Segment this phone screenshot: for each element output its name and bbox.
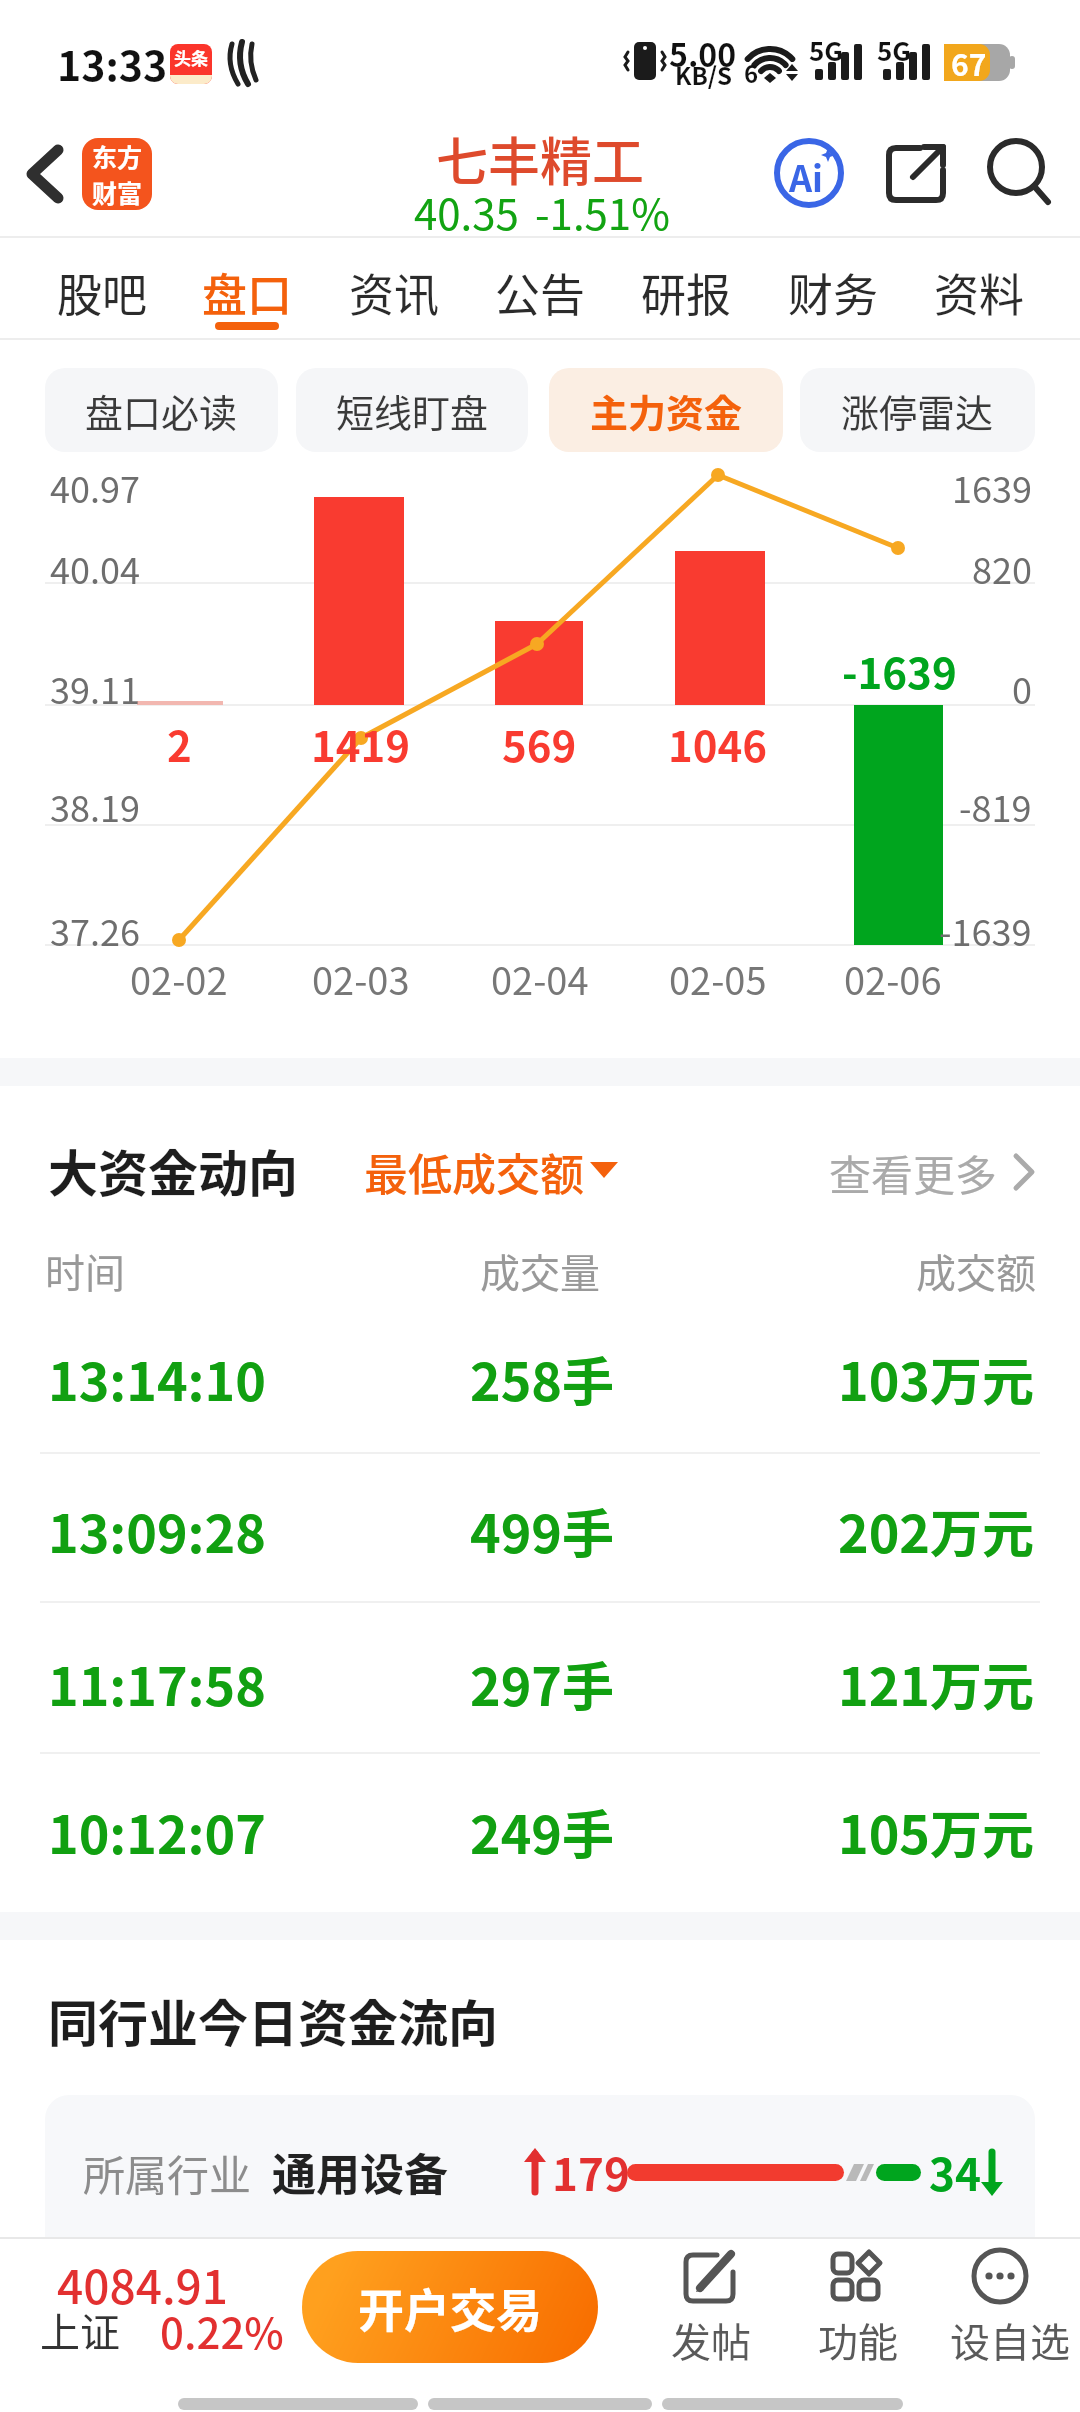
staticText: 财富 — [92, 174, 143, 210]
staticText: 时间 — [45, 1242, 125, 1300]
staticText: 设自选 — [950, 2311, 1070, 2369]
staticText: -1.51% — [535, 181, 670, 242]
button[interactable]: 涨停雷达 — [800, 368, 1035, 452]
button[interactable]: 主力资金 — [549, 368, 783, 452]
button[interactable] — [20, 2250, 280, 2360]
staticText: 5G — [809, 31, 843, 69]
button[interactable]: 资料 — [909, 248, 1049, 336]
staticText: 查看更多 — [829, 1142, 998, 1203]
staticText: 121万元 — [838, 1646, 1035, 1721]
staticText: 盘口 — [202, 260, 293, 325]
staticText: 财务 — [788, 260, 879, 325]
staticText: 盘口必读 — [85, 383, 238, 438]
button[interactable] — [880, 138, 952, 208]
staticText: 5.00 — [669, 30, 737, 76]
staticText: 上证 — [40, 2301, 120, 2359]
staticText: 499手 — [470, 1493, 615, 1568]
button[interactable] — [360, 1130, 630, 1210]
staticText: 179 — [552, 2140, 630, 2204]
staticText: 11:17:58 — [48, 1646, 266, 1721]
staticText: 资料 — [934, 260, 1025, 325]
staticText: 七丰精工 — [436, 121, 645, 196]
staticText: 6 — [744, 55, 759, 90]
staticText: 39.11 — [50, 662, 140, 714]
button[interactable] — [984, 136, 1054, 210]
staticText: 同行业今日资金流向 — [48, 1984, 498, 2056]
staticText: 569 — [502, 713, 577, 774]
staticText: 5G — [877, 31, 911, 69]
button[interactable] — [40, 1318, 1040, 1438]
staticText: 大资金动向 — [48, 1134, 298, 1206]
button[interactable] — [40, 1470, 1040, 1590]
staticText: 所属行业 — [83, 2142, 252, 2203]
staticText: 02-04 — [491, 951, 589, 1006]
staticText: 02-02 — [130, 951, 228, 1006]
staticText: 103万元 — [838, 1341, 1035, 1416]
button[interactable]: 东方 — [82, 138, 152, 210]
button[interactable]: 盘口必读 — [45, 368, 278, 452]
button[interactable] — [800, 2240, 915, 2370]
staticText: 13:14:10 — [48, 1341, 266, 1416]
button[interactable] — [45, 2095, 1035, 2237]
staticText: 最低成交额 — [364, 1140, 584, 1204]
button[interactable] — [774, 138, 844, 208]
staticText: 10:12:07 — [48, 1794, 266, 1869]
button[interactable]: 公告 — [470, 248, 610, 336]
staticText: 东方 — [92, 138, 143, 174]
staticText: 02-03 — [312, 951, 410, 1006]
staticText: 资讯 — [349, 260, 440, 325]
button[interactable]: 资讯 — [324, 248, 464, 336]
staticText: 105万元 — [838, 1794, 1035, 1869]
staticText: 40.35 — [414, 181, 519, 242]
staticText: 主力资金 — [590, 383, 743, 438]
staticText: 涨停雷达 — [841, 383, 994, 438]
button[interactable] — [840, 1130, 1040, 1210]
staticText: 0.22% — [160, 2300, 284, 2361]
staticText: 13:09:28 — [48, 1493, 266, 1568]
staticText: 成交量 — [480, 1242, 600, 1300]
button[interactable]: 财务 — [763, 248, 903, 336]
staticText: 短线盯盘 — [336, 383, 489, 438]
button[interactable] — [935, 2240, 1075, 2370]
staticText: 67 — [951, 41, 987, 84]
staticText: 1419 — [311, 713, 411, 774]
staticText: 1046 — [668, 713, 768, 774]
button[interactable]: 开户交易 — [302, 2251, 598, 2363]
staticText: 37.26 — [50, 904, 140, 956]
staticText: 研报 — [641, 260, 732, 325]
button[interactable]: 盘口 — [177, 248, 317, 336]
button[interactable] — [40, 1771, 1040, 1891]
button[interactable] — [40, 1623, 1040, 1743]
staticText: 40.97 — [50, 461, 140, 513]
staticText: 38.19 — [50, 780, 140, 832]
staticText: -1639 — [842, 640, 957, 701]
staticText: 249手 — [470, 1794, 615, 1869]
staticText: 功能 — [818, 2311, 898, 2369]
staticText: 02-05 — [669, 951, 767, 1006]
staticText: 02-06 — [844, 951, 942, 1006]
button[interactable] — [10, 130, 80, 220]
staticText: 258手 — [470, 1341, 615, 1416]
button[interactable] — [650, 2240, 770, 2370]
staticText: -1639 — [939, 904, 1032, 956]
staticText: 成交额 — [916, 1242, 1036, 1300]
staticText: 0 — [1012, 662, 1032, 714]
button[interactable]: 研报 — [616, 248, 756, 336]
button[interactable]: 短线盯盘 — [296, 368, 528, 452]
staticText: 40.04 — [50, 542, 140, 594]
staticText: KB/S — [675, 57, 733, 92]
staticText: 头条 — [174, 45, 208, 70]
staticText: 13:33 — [57, 33, 168, 92]
staticText: 34 — [929, 2140, 981, 2204]
staticText: 开户交易 — [358, 2274, 542, 2341]
staticText: Ai — [789, 150, 824, 202]
staticText: 820 — [972, 542, 1032, 594]
staticText: 发帖 — [671, 2311, 751, 2369]
staticText: -819 — [959, 780, 1032, 832]
staticText: 4084.91 — [57, 2251, 229, 2318]
staticText: 1639 — [952, 461, 1032, 513]
button[interactable]: 股吧 — [32, 248, 172, 336]
staticText: 公告 — [495, 260, 586, 325]
staticText: 202万元 — [838, 1493, 1035, 1568]
staticText: 通用设备 — [272, 2140, 448, 2204]
